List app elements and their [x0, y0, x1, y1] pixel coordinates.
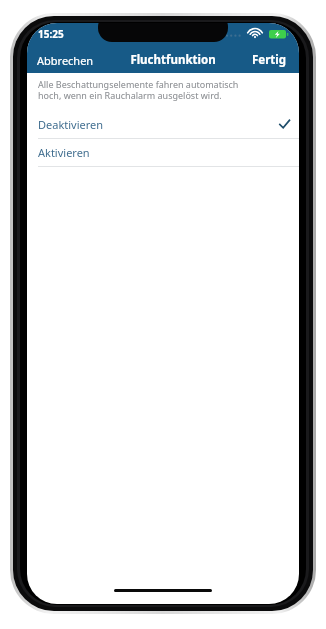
staticText: Abbrechen — [37, 53, 94, 68]
staticText: Fluchtfunktion — [130, 52, 216, 68]
staticText: Fertig — [252, 52, 287, 68]
staticText: Alle Beschattungselemente fahren automat… — [38, 78, 239, 102]
button[interactable]: Abbrechen — [27, 47, 100, 73]
staticText: 15:25 — [38, 27, 64, 41]
button[interactable]: Aktivieren — [27, 139, 299, 167]
other: Ausgewählt — [279, 119, 290, 130]
staticText: Aktivieren — [38, 145, 90, 160]
staticText: Deaktivieren — [38, 117, 104, 132]
button[interactable]: Deaktivieren — [27, 111, 299, 139]
button[interactable]: Fertig — [246, 47, 299, 73]
